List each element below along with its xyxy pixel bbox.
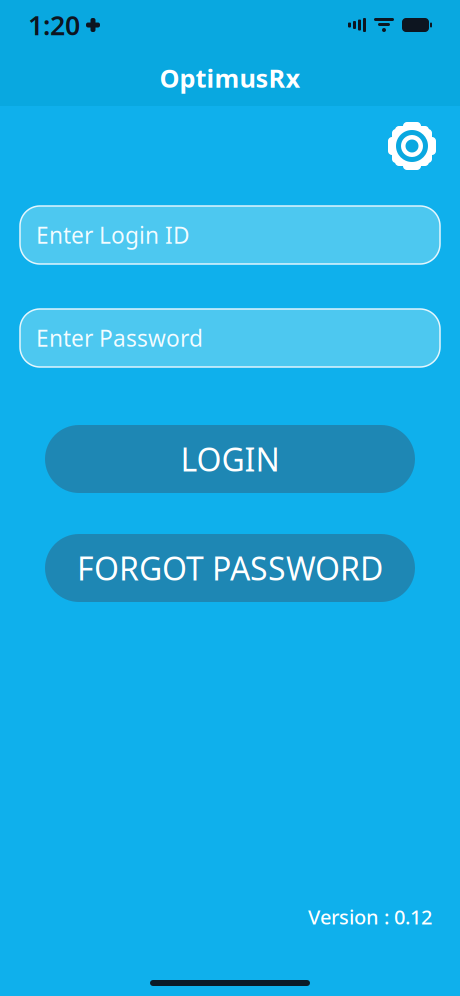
staticText: 1:20 [28, 7, 80, 43]
button[interactable]: LOGIN [45, 425, 415, 493]
staticText: Enter Login ID [36, 220, 190, 250]
staticText: LOGIN [180, 438, 279, 480]
staticText: Version : 0.12 [308, 903, 432, 930]
staticText: Enter Password [36, 323, 203, 353]
button[interactable]: Settings [384, 118, 440, 174]
staticText: FORGOT PASSWORD [77, 547, 383, 589]
button[interactable]: Enter Password [20, 309, 440, 367]
staticText: OptimusRx [159, 61, 300, 95]
button[interactable]: Enter Login ID [20, 206, 440, 264]
button[interactable]: FORGOT PASSWORD [45, 534, 415, 602]
